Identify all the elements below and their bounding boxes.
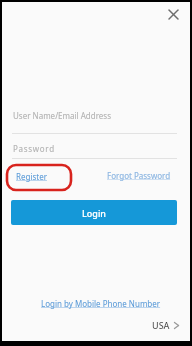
staticText: Register (16, 171, 48, 182)
staticText: User Name/Email Address (13, 110, 112, 121)
staticText: Password (13, 143, 55, 154)
staticText: Forgot Password (107, 170, 171, 181)
button[interactable]: Login (11, 200, 177, 225)
button[interactable]: USA (148, 315, 183, 335)
staticText: Login (82, 207, 106, 219)
staticText: USA (152, 319, 170, 331)
button[interactable]: Forgot Password (101, 164, 177, 187)
button[interactable]: Register (10, 165, 54, 188)
button[interactable] (164, 5, 182, 23)
staticText: Login by Mobile Phone Number (41, 298, 161, 309)
button[interactable]: Login by Mobile Phone Number (7, 298, 192, 309)
